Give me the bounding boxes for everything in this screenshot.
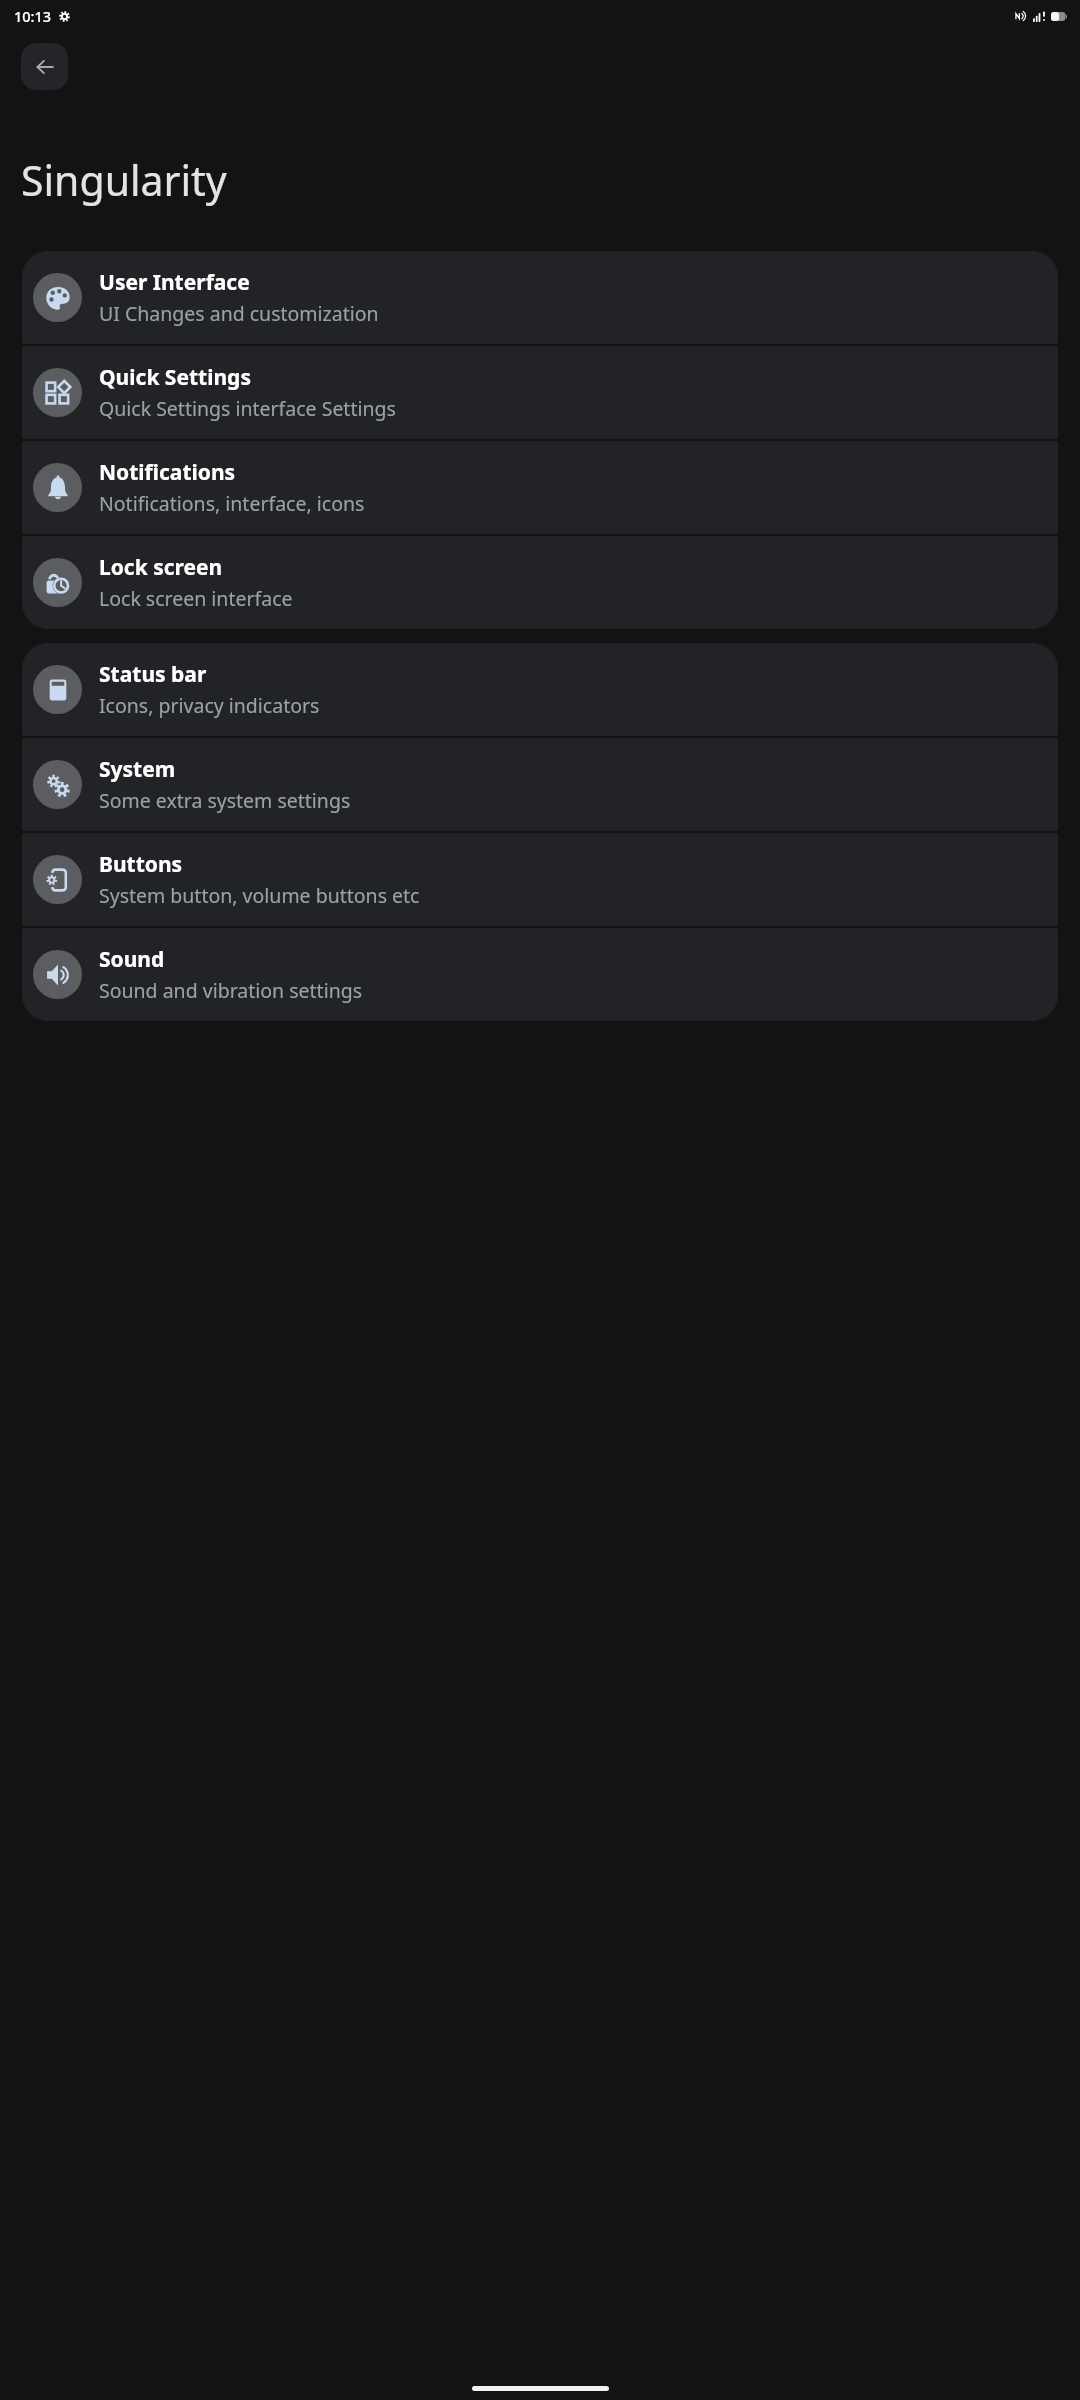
button[interactable]: Sound — [22, 928, 1058, 1021]
staticText: Quick Settings — [99, 363, 251, 392]
staticText: Some extra system settings — [99, 787, 351, 814]
button[interactable]: Notifications — [22, 441, 1058, 534]
staticText: Sound — [99, 945, 165, 974]
staticText: Icons, privacy indicators — [99, 692, 320, 719]
staticText: Quick Settings interface Settings — [99, 395, 396, 422]
staticText: Lock screen — [99, 553, 223, 582]
button[interactable]: Lock screen — [22, 536, 1058, 629]
staticText: UI Changes and customization — [99, 300, 379, 327]
staticText: Buttons — [99, 850, 183, 879]
button[interactable]: Buttons — [22, 833, 1058, 926]
staticText: Lock screen interface — [99, 585, 293, 612]
staticText: 10:13 — [14, 6, 52, 26]
button[interactable]: User Interface — [22, 251, 1058, 344]
staticText: System — [99, 755, 176, 784]
staticText: Notifications — [99, 458, 236, 487]
staticText: User Interface — [99, 268, 250, 297]
staticText: Singularity — [21, 152, 227, 208]
button[interactable]: System — [22, 738, 1058, 831]
button[interactable]: Status bar — [22, 643, 1058, 736]
button[interactable]: Quick Settings — [22, 346, 1058, 439]
staticText: Sound and vibration settings — [99, 977, 363, 1004]
staticText: Status bar — [99, 660, 207, 689]
button[interactable]: Back — [21, 43, 68, 90]
staticText: System button, volume buttons etc — [99, 882, 420, 909]
staticText: Notifications, interface, icons — [99, 490, 365, 517]
